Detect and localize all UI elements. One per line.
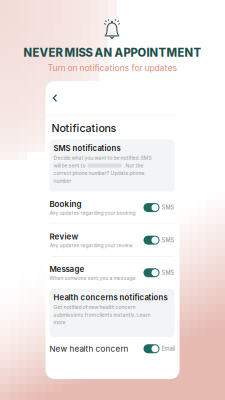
staticText: Message: [49, 264, 84, 274]
staticText: correct phone number? Update phone: [53, 170, 144, 176]
button[interactable]: Back: [45, 81, 179, 115]
staticText: Decide what you want to be notified. SMS: [53, 155, 151, 161]
button[interactable]: New health concern: [45, 337, 175, 361]
staticText: number: [53, 178, 71, 184]
staticText: When someone sent you a message: [49, 275, 135, 281]
staticText: Notifications: [51, 122, 116, 134]
staticText: Health concerns notifications: [53, 293, 167, 302]
button[interactable]: Booking: [49, 191, 175, 223]
staticText: Booking: [49, 199, 81, 209]
staticText: Any updates regarding your review: [49, 242, 132, 248]
button[interactable]: Message: [49, 257, 175, 289]
staticText: Get notified of new health concern: [53, 304, 135, 310]
button[interactable]: Review: [49, 224, 175, 256]
staticText: SMS: [161, 269, 174, 276]
staticText: will be sent to: [53, 162, 85, 169]
staticText: Turn on notifications for updates: [47, 63, 177, 73]
staticText: New health concern: [49, 344, 128, 354]
staticText: more: [53, 319, 65, 325]
staticText: Any updates regarding your booking: [49, 210, 135, 216]
staticText: NEVER MISS AN APPOINTMENT: [23, 46, 201, 60]
staticText: SMS notifications: [53, 143, 120, 153]
staticText: submissions from clients instantly. Lear…: [53, 312, 150, 318]
staticText: Email: [161, 345, 174, 352]
staticText: . Not the: [123, 162, 143, 169]
staticText: SMS: [161, 237, 174, 244]
staticText: SMS: [161, 204, 174, 211]
staticText: Review: [49, 232, 78, 241]
